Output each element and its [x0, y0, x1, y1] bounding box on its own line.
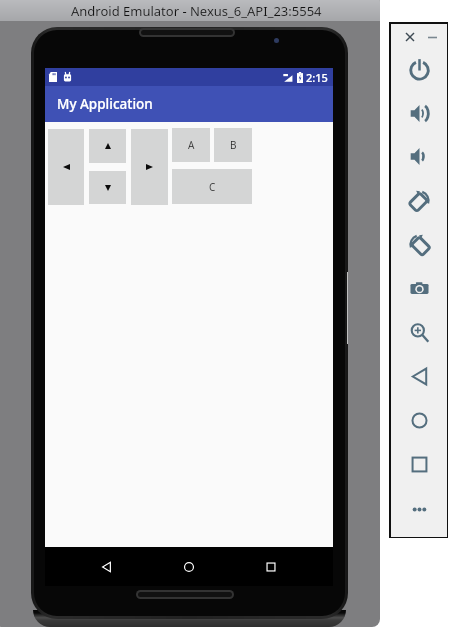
other: Right — [146, 164, 153, 170]
button[interactable]: Rotate right — [405, 230, 433, 258]
button[interactable]: A — [172, 128, 210, 162]
staticText: My Application — [57, 95, 153, 113]
button[interactable]: My Application — [45, 86, 333, 122]
button[interactable]: Screenshot — [405, 274, 433, 302]
button[interactable]: Overview — [405, 450, 433, 478]
button[interactable]: Zoom — [405, 318, 433, 346]
button[interactable]: Volume up — [405, 99, 433, 127]
button[interactable]: Back — [405, 362, 433, 390]
staticText: C — [209, 180, 216, 194]
button[interactable]: Recents — [256, 552, 286, 582]
button[interactable]: Rotate left — [405, 186, 433, 214]
other: Left — [63, 164, 70, 170]
button[interactable]: Up — [89, 129, 126, 163]
button[interactable]: Volume down — [405, 142, 433, 170]
button[interactable]: Close — [400, 27, 420, 47]
button[interactable]: Home — [405, 406, 433, 434]
button[interactable]: More — [405, 495, 433, 523]
staticText: B — [230, 138, 237, 152]
staticText: A — [188, 138, 195, 152]
staticText: Android Emulator - Nexus_6_API_23:5554 — [71, 2, 322, 20]
button[interactable]: C — [172, 169, 252, 204]
button[interactable]: Back — [92, 552, 122, 582]
button[interactable]: Right — [131, 129, 168, 205]
button[interactable]: Home — [174, 552, 204, 582]
button[interactable]: Down — [89, 171, 126, 204]
other: Up — [105, 143, 111, 149]
button[interactable]: Minimize — [422, 27, 442, 47]
staticText: 2:15 — [306, 70, 328, 85]
button[interactable]: Power — [405, 55, 433, 83]
other: Down — [105, 185, 111, 191]
button[interactable]: B — [214, 128, 252, 162]
button[interactable]: Left — [48, 129, 84, 205]
